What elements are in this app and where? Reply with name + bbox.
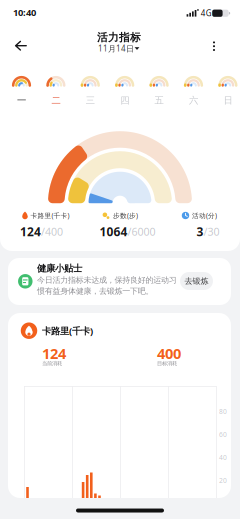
staticText: 活动(分) xyxy=(192,211,217,220)
staticText: 活力指标 xyxy=(97,31,141,44)
staticText: 60 xyxy=(219,430,227,439)
button[interactable]: 去锻炼 xyxy=(180,272,213,290)
staticText: 卡路里(千卡) xyxy=(30,211,69,220)
staticText: 步数(步) xyxy=(113,211,138,220)
staticText: 1064 xyxy=(99,223,127,239)
staticText: 三 xyxy=(86,95,95,106)
staticText: 四 xyxy=(120,95,129,106)
button[interactable]: 日 xyxy=(213,66,240,106)
staticText: 一 xyxy=(17,95,26,106)
staticText: 4G xyxy=(201,8,212,18)
button[interactable] xyxy=(202,34,226,58)
staticText: 今日活力指标未达成，保持良好的运动习 xyxy=(37,275,177,285)
staticText: 80 xyxy=(219,407,227,416)
staticText: 惯有益身体健康，去锻炼一下吧。 xyxy=(37,286,153,296)
staticText: 124 xyxy=(20,223,41,239)
staticText: /400 xyxy=(41,224,63,239)
staticText: /30 xyxy=(203,224,219,239)
staticText: 11月14日 xyxy=(98,43,134,54)
staticText: 目标消耗 xyxy=(157,360,177,367)
staticText: 40 xyxy=(219,453,227,462)
staticText: 去锻炼 xyxy=(184,276,208,286)
staticText: 二 xyxy=(51,95,60,106)
staticText: 当前消耗 xyxy=(42,360,62,367)
staticText: /6000 xyxy=(127,224,155,239)
staticText: 健康小贴士 xyxy=(37,263,82,274)
staticText: 400 xyxy=(157,344,181,363)
staticText: 日 xyxy=(223,95,232,106)
button[interactable]: 六 xyxy=(178,66,208,106)
staticText: 124 xyxy=(42,344,66,363)
button[interactable]: 五 xyxy=(144,66,174,106)
staticText: 10:40 xyxy=(13,6,36,19)
button[interactable]: 一 xyxy=(6,66,36,106)
button[interactable]: 11月14日 xyxy=(96,37,144,59)
staticText: 20 xyxy=(219,476,227,485)
staticText: 六 xyxy=(189,95,198,106)
button[interactable]: 二 xyxy=(41,66,71,106)
button[interactable]: 三 xyxy=(75,66,105,106)
button[interactable] xyxy=(8,33,34,59)
staticText: 卡路里(千卡) xyxy=(42,324,93,337)
button[interactable] xyxy=(8,258,231,305)
staticText: 五 xyxy=(155,95,164,106)
button[interactable]: 四 xyxy=(110,66,140,106)
staticText: 3 xyxy=(196,223,203,239)
